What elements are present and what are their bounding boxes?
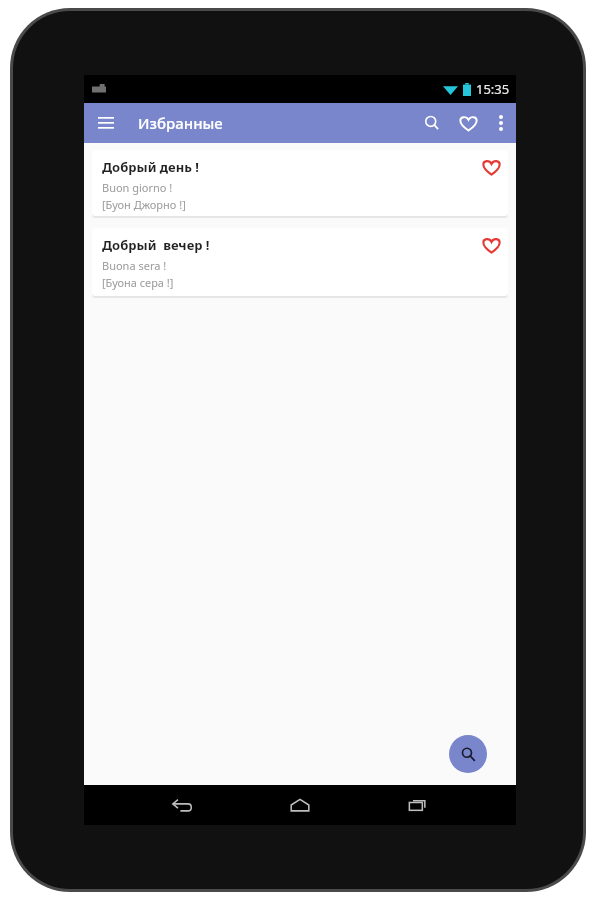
button[interactable]: Back xyxy=(158,785,206,825)
button[interactable]: Remove from favourites xyxy=(480,156,502,178)
staticText: Избранные xyxy=(138,113,223,133)
staticText: 15:35 xyxy=(476,80,510,98)
button[interactable]: Добрый вечер ! xyxy=(92,228,508,296)
button[interactable]: Добрый день ! xyxy=(92,150,508,216)
button[interactable]: More options xyxy=(486,103,516,143)
staticText: Buona sera ! xyxy=(102,258,167,273)
staticText: Добрый вечер ! xyxy=(102,236,210,254)
staticText: [Буон Джорно !] xyxy=(102,197,186,212)
button[interactable]: Search xyxy=(414,103,450,143)
staticText: [Буона сера !] xyxy=(102,275,174,290)
staticText: Добрый день ! xyxy=(102,158,199,176)
button[interactable]: Open navigation drawer xyxy=(84,103,128,143)
button[interactable]: Search xyxy=(449,735,487,773)
button[interactable]: Home xyxy=(276,785,324,825)
button[interactable]: Recent apps xyxy=(394,785,442,825)
staticText: Buon giorno ! xyxy=(102,180,173,195)
button[interactable]: Remove from favourites xyxy=(480,234,502,256)
button[interactable]: Favourites xyxy=(450,103,486,143)
